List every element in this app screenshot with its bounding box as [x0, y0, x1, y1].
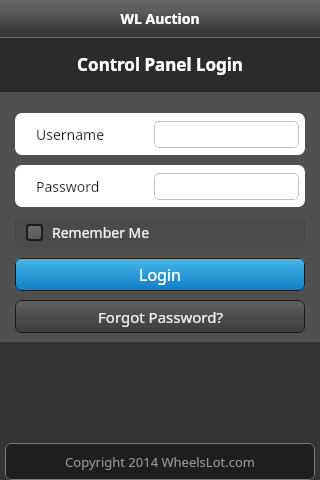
staticText: Username: [36, 125, 105, 144]
staticText: Remember Me: [52, 223, 150, 242]
staticText: Forgot Password?: [98, 307, 223, 327]
button[interactable]: Login: [15, 258, 305, 291]
button[interactable]: Username: [15, 113, 305, 155]
staticText: Password: [36, 177, 100, 196]
staticText: Login: [139, 264, 181, 286]
button[interactable]: Password: [15, 165, 305, 207]
button[interactable]: Forgot Password?: [15, 300, 305, 333]
staticText: WL Auction: [120, 9, 200, 28]
button[interactable]: Remember Me: [15, 217, 305, 248]
staticText: Copyright 2014 WheelsLot.com: [65, 453, 255, 471]
staticText: Control Panel Login: [77, 53, 243, 76]
